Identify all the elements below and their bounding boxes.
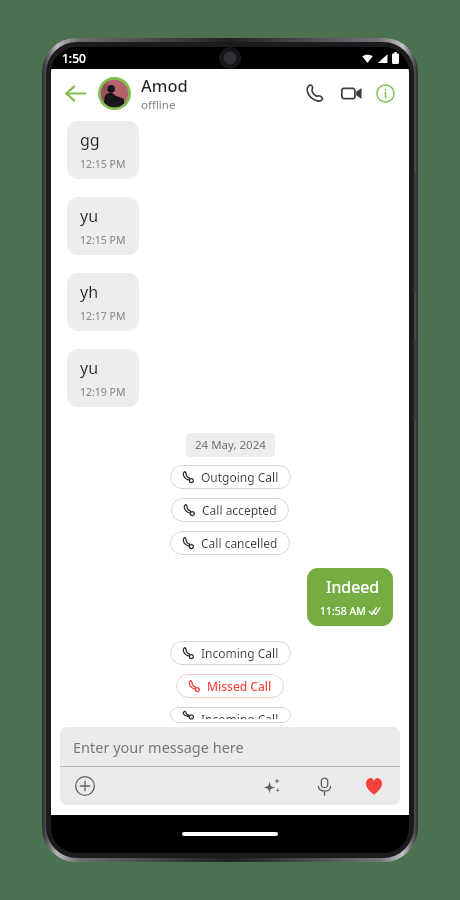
button[interactable]: Outgoing Call (170, 465, 291, 489)
staticText: Enter your message here (73, 737, 244, 757)
button[interactable]: Info (369, 77, 401, 109)
staticText: yh (80, 281, 99, 303)
button[interactable]: Back (59, 77, 91, 109)
button[interactable]: yh (67, 273, 139, 331)
staticText: 12:19 PM (80, 385, 126, 399)
staticText: yu (80, 205, 99, 227)
staticText: offline (141, 97, 176, 113)
staticText: 1:50 (62, 50, 86, 66)
staticText: Missed Call (207, 678, 272, 694)
staticText: yu (80, 357, 99, 379)
staticText: Call accepted (202, 502, 277, 518)
staticText: Incoming Call (201, 711, 279, 719)
staticText: Incoming Call (201, 645, 279, 661)
staticText: 24 May, 2024 (195, 437, 266, 453)
button[interactable]: Attach (70, 771, 100, 801)
staticText: 12:15 PM (80, 157, 126, 171)
button[interactable]: gg (67, 121, 139, 179)
button[interactable]: AI suggestions (256, 770, 288, 802)
button[interactable]: Call cancelled (170, 531, 290, 555)
button[interactable]: Voice call (297, 76, 331, 110)
staticText: Indeed (326, 576, 380, 598)
staticText: Amod (141, 74, 188, 96)
button[interactable]: yu (67, 197, 139, 255)
button[interactable]: Send heart (358, 770, 390, 802)
button[interactable]: Enter your message here (60, 727, 400, 805)
button[interactable]: Profile photo (98, 77, 131, 110)
button[interactable]: 24 May, 2024 (186, 433, 275, 457)
staticText: Call cancelled (201, 535, 278, 551)
button[interactable]: Incoming Call (170, 641, 291, 665)
button[interactable]: Missed Call (176, 674, 284, 698)
staticText: gg (80, 129, 100, 151)
button[interactable]: Voice message (308, 770, 340, 802)
button[interactable]: yu (67, 349, 139, 407)
staticText: 12:17 PM (80, 309, 126, 323)
button[interactable]: Indeed (307, 568, 393, 626)
button[interactable]: Incoming Call (170, 707, 291, 723)
button[interactable]: Call accepted (171, 498, 289, 522)
button[interactable]: Video call (334, 76, 368, 110)
staticText: 12:15 PM (80, 233, 126, 247)
staticText: Outgoing Call (201, 469, 279, 485)
staticText: 11:58 AM (320, 604, 366, 618)
